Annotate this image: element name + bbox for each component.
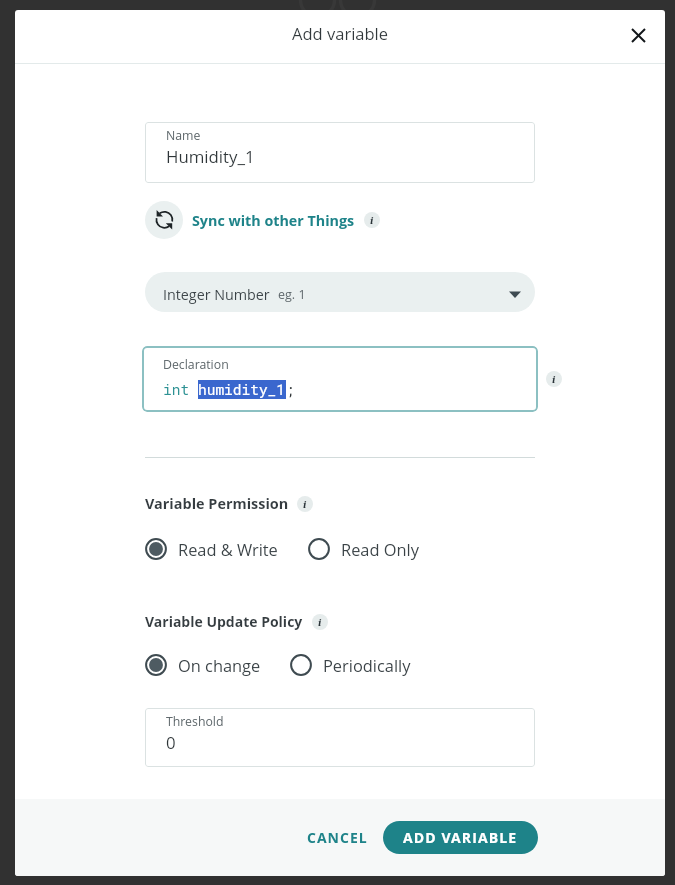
- staticText: i: [370, 215, 374, 226]
- staticText: Sync with other Things: [192, 211, 355, 230]
- button[interactable]: Threshold: [145, 708, 535, 767]
- button[interactable]: Integer Number: [145, 272, 535, 312]
- staticText: Integer Number: [163, 285, 270, 304]
- button[interactable]: More info: [364, 212, 380, 228]
- button[interactable]: More info: [312, 614, 328, 630]
- button[interactable]: CANCEL: [293, 819, 376, 856]
- button[interactable]: Read & Write: [145, 538, 278, 560]
- staticText: Variable Update Policy: [145, 612, 303, 631]
- button[interactable]: Sync with other Things: [145, 201, 355, 239]
- button[interactable]: More info: [297, 496, 313, 512]
- staticText: Read & Write: [178, 538, 278, 560]
- button[interactable]: More info: [546, 371, 562, 387]
- staticText: humidity_1: [198, 380, 286, 399]
- button[interactable]: ADD VARIABLE: [383, 821, 538, 854]
- staticText: i: [552, 374, 556, 385]
- staticText: On change: [178, 654, 261, 676]
- button[interactable]: Read Only: [308, 538, 419, 560]
- staticText: int: [163, 380, 198, 399]
- staticText: 0: [166, 731, 176, 754]
- button[interactable]: Name: [145, 122, 535, 183]
- staticText: Periodically: [323, 654, 411, 676]
- staticText: Variable Permission: [145, 494, 289, 514]
- staticText: Read Only: [341, 538, 419, 560]
- staticText: i: [303, 499, 307, 510]
- button[interactable]: Close: [620, 19, 656, 55]
- staticText: Declaration: [163, 356, 229, 373]
- staticText: ADD VARIABLE: [403, 828, 518, 847]
- staticText: Name: [166, 127, 201, 144]
- button[interactable]: Declaration: [142, 346, 538, 412]
- staticText: Humidity_1: [166, 145, 255, 168]
- staticText: CANCEL: [307, 828, 368, 847]
- button[interactable]: Periodically: [290, 654, 411, 676]
- staticText: eg. 1: [278, 286, 306, 303]
- staticText: ;: [286, 380, 295, 399]
- staticText: Threshold: [166, 713, 224, 730]
- staticText: Add variable: [292, 22, 389, 44]
- staticText: i: [318, 617, 322, 628]
- button[interactable]: On change: [145, 654, 261, 676]
